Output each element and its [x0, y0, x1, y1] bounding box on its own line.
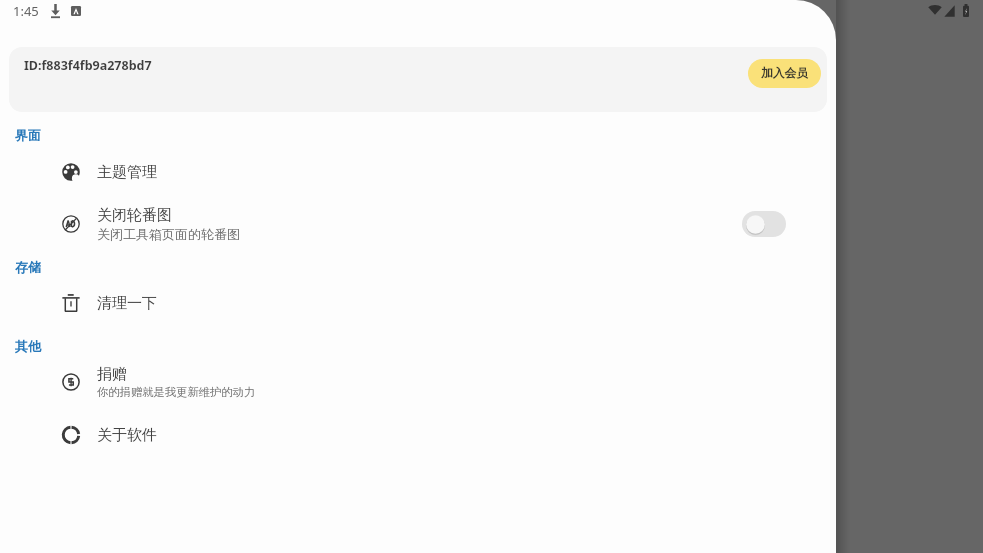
button[interactable]: 关闭轮番图 — [0, 198, 836, 250]
staticText: 1:45 — [13, 2, 39, 20]
staticText: 你的捐赠就是我更新维护的动力 — [97, 385, 256, 399]
button[interactable]: 关于软件 — [0, 409, 836, 461]
staticText: ID:f883f4fb9a278bd7 — [24, 57, 152, 74]
button[interactable]: 清理一下 — [0, 277, 836, 329]
button[interactable]: 加入会员 — [748, 59, 821, 88]
staticText: 加入会员 — [761, 66, 809, 81]
button[interactable]: 主题管理 — [0, 146, 836, 198]
button[interactable]: Toggle carousel — [742, 211, 786, 237]
button[interactable]: 捐赠 — [0, 356, 836, 408]
button[interactable]: ID:f883f4fb9a278bd7 — [9, 47, 827, 112]
staticText: 清理一下 — [97, 294, 157, 313]
staticText: 捐赠 — [97, 365, 127, 384]
staticText: 界面 — [15, 127, 41, 143]
staticText: 主题管理 — [97, 163, 157, 182]
staticText: 其他 — [15, 338, 41, 354]
staticText: 存储 — [15, 259, 41, 275]
staticText: 关于软件 — [97, 426, 157, 445]
staticText: 关闭工具箱页面的轮番图 — [97, 226, 240, 242]
staticText: 关闭轮番图 — [97, 206, 172, 225]
